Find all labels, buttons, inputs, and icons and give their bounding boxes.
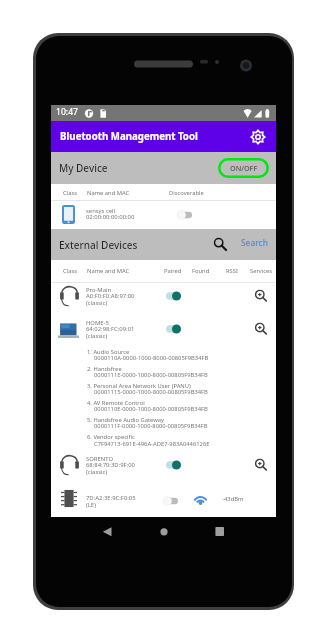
staticText: ON/OFF: [230, 163, 258, 173]
button[interactable]: Off: [163, 496, 178, 506]
staticText: 68:84:70:3D:9F:00: [86, 461, 135, 469]
staticText: 0000110A-0000-1000-8000-00805F9B34FB: [94, 354, 209, 362]
staticText: 3. Personal Area Network User (PANU): [87, 382, 191, 390]
button[interactable]: On: [166, 291, 181, 301]
staticText: HOME-5: [86, 319, 109, 327]
button[interactable]: Inspect services: [254, 289, 268, 303]
staticText: 2. Handsfree: [87, 365, 122, 373]
button[interactable]: ON/OFF: [218, 158, 269, 178]
button[interactable]: [51, 491, 276, 517]
button[interactable]: Back: [95, 522, 119, 542]
staticText: My Device: [59, 161, 108, 175]
staticText: 6. Vendor specific: [87, 433, 135, 441]
staticText: Name and MAC: [87, 267, 130, 275]
staticText: 0000111F-0000-1000-8000-00805F9B34FB: [94, 422, 208, 430]
button[interactable]: Inspect services: [254, 458, 268, 472]
button[interactable]: Settings: [248, 127, 267, 146]
staticText: (classic): [86, 468, 108, 476]
staticText: Found: [192, 267, 210, 275]
button[interactable]: External Devices: [51, 229, 276, 260]
button[interactable]: Inspect services: [254, 322, 268, 336]
staticText: SORENTO: [86, 455, 114, 463]
staticText: 0000110E-0000-1000-8000-00805F9B34FB: [94, 405, 208, 413]
staticText: 02:00:00:00:00:00: [86, 213, 135, 221]
staticText: 64:02:98:FC:09:01: [86, 325, 135, 333]
staticText: (classic): [86, 299, 108, 307]
button[interactable]: Bluetooth Management Tool: [51, 121, 276, 152]
staticText: Bluetooth Management Tool: [60, 130, 198, 143]
staticText: Discoverable: [169, 189, 204, 197]
staticText: A0:F0:F0:A8:97:00: [86, 292, 135, 300]
staticText: 10:47: [56, 106, 78, 118]
button[interactable]: [51, 283, 276, 315]
staticText: 4. AV Remote Control: [87, 399, 145, 407]
staticText: 5. Handsfree Audio Gateway: [87, 416, 165, 424]
staticText: sensys cell: [86, 207, 116, 215]
button[interactable]: On: [166, 324, 181, 334]
staticText: 00001115-0000-1000-8000-00805F9B34FB: [94, 388, 208, 396]
button[interactable]: Home: [152, 522, 176, 542]
staticText: 1. Audio Source: [87, 348, 130, 356]
button[interactable]: Off: [177, 210, 192, 220]
button[interactable]: Search: [241, 237, 268, 248]
button[interactable]: Search: [210, 234, 230, 254]
staticText: 0000111E-0000-1000-8000-00805F9B34FB: [94, 371, 208, 379]
staticText: -43dBm: [222, 495, 244, 503]
staticText: (classic): [86, 332, 108, 340]
staticText: Pro-Main: [86, 286, 112, 294]
staticText: 7D:A2:3E:9C:F0:05: [86, 494, 136, 502]
staticText: Paired: [164, 267, 182, 275]
button[interactable]: [51, 316, 276, 348]
staticText: (LE): [86, 501, 96, 509]
staticText: C7F94713-691E-496A-ADE7-983A0446126E: [94, 440, 210, 448]
staticText: Name and MAC: [87, 189, 130, 197]
staticText: Search: [241, 237, 268, 248]
staticText: RSSI: [226, 267, 238, 275]
staticText: Class: [63, 189, 77, 197]
button[interactable]: Recent apps: [208, 522, 232, 542]
button[interactable]: [51, 201, 276, 229]
button[interactable]: On: [166, 460, 181, 470]
staticText: External Devices: [59, 238, 138, 252]
button[interactable]: [51, 452, 276, 484]
staticText: Class: [63, 267, 77, 275]
button[interactable]: My Device: [51, 152, 276, 184]
staticText: Services: [250, 267, 273, 275]
